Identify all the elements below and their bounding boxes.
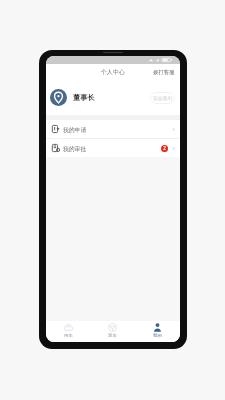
staticText: 我的审批 [63, 145, 87, 152]
button[interactable]: 我的申请 [46, 120, 180, 138]
staticText: 拨打客服 [153, 69, 175, 76]
button[interactable]: 派车 [90, 321, 135, 342]
button[interactable]: 我的 [135, 321, 180, 342]
staticText: 派车 [108, 333, 117, 339]
button[interactable]: 拨打客服 [148, 66, 180, 79]
staticText: 安全退出 [153, 95, 173, 101]
staticText: 我的申请 [63, 126, 87, 133]
button[interactable]: 用车 [46, 321, 90, 342]
staticText: 个人中心 [101, 68, 125, 76]
button[interactable]: 董事长 [46, 80, 180, 115]
button[interactable]: 我的审批 [46, 139, 180, 157]
button[interactable]: 安全退出 [150, 92, 175, 104]
staticText: 2 [163, 145, 166, 152]
staticText: 用车 [64, 333, 73, 339]
staticText: 我的 [153, 333, 162, 339]
staticText: 董事长 [73, 93, 95, 102]
